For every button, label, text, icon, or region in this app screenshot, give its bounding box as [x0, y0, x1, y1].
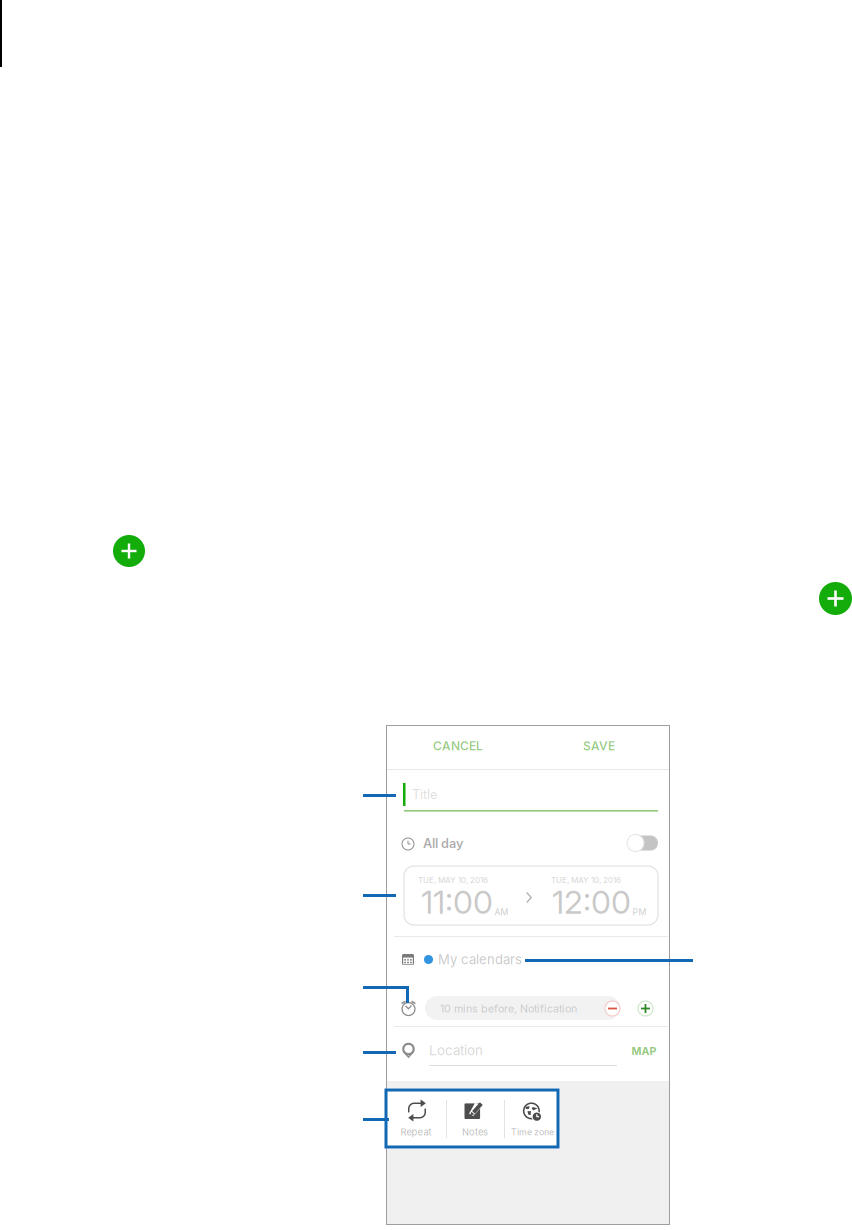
- staticText: CANCEL: [433, 739, 483, 753]
- button[interactable]: Add reminder: [0, 0, 852, 1230]
- staticText: Notes: [462, 1126, 488, 1138]
- staticText: 12:00: [552, 883, 631, 921]
- button[interactable]: Notes: [0, 0, 852, 1230]
- button[interactable]: MAP: [0, 0, 852, 1230]
- staticText: TUE, MAY 10, 2016: [551, 875, 621, 885]
- button[interactable]: CANCEL: [0, 0, 852, 1230]
- staticText: 10 mins before, Notification: [440, 1002, 577, 1015]
- button[interactable]: Time zone: [0, 0, 852, 1230]
- staticText: MAP: [631, 1044, 656, 1057]
- staticText: AM: [494, 907, 508, 917]
- button[interactable]: Add: [0, 0, 852, 1230]
- button[interactable]: SAVE: [0, 0, 852, 1230]
- staticText: 11:00: [421, 883, 493, 921]
- button[interactable]: [0, 0, 852, 1230]
- staticText: Location: [429, 1042, 483, 1058]
- staticText: My calendars: [438, 952, 522, 967]
- staticText: TUE, MAY 10, 2016: [418, 875, 488, 885]
- staticText: SAVE: [583, 739, 615, 753]
- button[interactable]: [0, 0, 852, 1230]
- button[interactable]: Remove reminder: [0, 0, 852, 1230]
- staticText: Time zone: [511, 1127, 554, 1137]
- button[interactable]: My calendars: [0, 0, 852, 1230]
- staticText: Repeat: [400, 1126, 431, 1138]
- button[interactable]: Repeat: [0, 0, 852, 1230]
- button[interactable]: Add event: [0, 0, 852, 1230]
- staticText: All day: [423, 836, 463, 851]
- staticText: Title: [412, 787, 437, 802]
- staticText: PM: [632, 907, 646, 917]
